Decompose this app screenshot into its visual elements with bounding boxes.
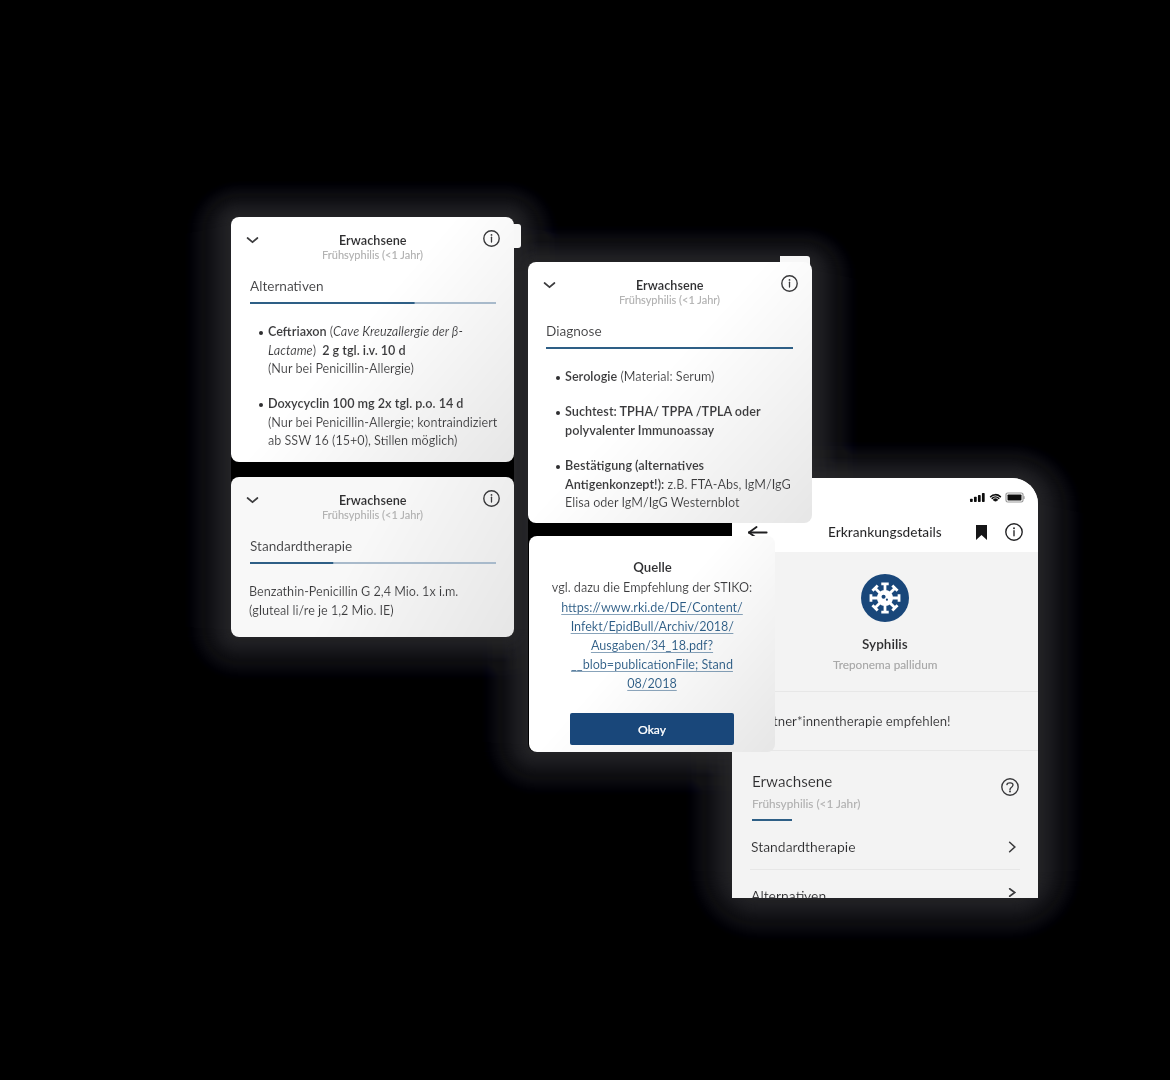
staticText: Frühsyphilis (<1 Jahr) [322, 508, 424, 521]
other: Collapse [542, 277, 557, 292]
button[interactable]: Info [483, 490, 500, 507]
staticText: Doxycyclin 100 mg 2x tgl. p.o. 14 d (Nur… [268, 396, 500, 448]
button[interactable]: Erwachsene [528, 262, 812, 523]
button[interactable]: Collapse [245, 492, 260, 507]
staticText: Erwachsene [636, 278, 704, 293]
staticText: Okay [638, 722, 667, 737]
other: Help [1001, 778, 1019, 796]
staticText: Standardtherapie [751, 838, 1005, 855]
button[interactable]: Erwachsene [231, 477, 514, 637]
button[interactable]: Back [741, 516, 773, 548]
button[interactable]: Info [483, 230, 500, 247]
button[interactable]: Bookmark [967, 518, 995, 546]
other: Info [483, 490, 500, 507]
staticText: Benzathin-Penicillin G 2,4 Mio. 1x i.m. … [249, 584, 459, 618]
other: Collapse [245, 232, 260, 247]
staticText: Diagnose [546, 323, 602, 339]
staticText: Erkrankungsdetails [828, 524, 942, 540]
staticText: Ceftriaxon (Cave Kreuzallergie der β-Lac… [268, 324, 500, 376]
staticText: Alternativen [250, 278, 324, 294]
button[interactable]: Collapse [245, 232, 260, 247]
other: Info [1005, 523, 1023, 541]
staticText: Erwachsene [752, 772, 833, 790]
staticText: Frühsyphilis (<1 Jahr) [619, 293, 721, 306]
button[interactable]: Info [1000, 518, 1028, 546]
staticText: Erwachsene [339, 233, 407, 248]
button[interactable]: Okay [570, 713, 734, 745]
button[interactable]: Help [1001, 778, 1019, 796]
button[interactable]: Erwachsene [752, 772, 1019, 821]
staticText: vgl. dazu die Empfehlung der STIKO: http… [547, 580, 757, 690]
other: Info [781, 275, 798, 292]
button[interactable]: Standardtherapie [732, 824, 1038, 869]
button[interactable]: Partner*innentherapie empfehlen! [732, 692, 1038, 750]
staticText: Quelle [633, 559, 672, 575]
staticText: Alternativen [751, 887, 1005, 898]
staticText: Frühsyphilis (<1 Jahr) [752, 796, 861, 810]
button[interactable]: Alternativen [732, 887, 1038, 898]
staticText: Bestätigung (alternatives Antigenkonzept… [565, 458, 794, 510]
staticText: Standardtherapie [250, 538, 353, 554]
other: Collapse [245, 492, 260, 507]
button[interactable]: Collapse [542, 277, 557, 292]
staticText: Serologie (Material: Serum) [565, 369, 715, 384]
staticText: Suchtest: TPHA/ TPPA /TPLA oder polyvale… [565, 404, 794, 438]
button[interactable]: Erwachsene [231, 217, 514, 462]
staticText: Frühsyphilis (<1 Jahr) [322, 248, 424, 261]
staticText: Syphilis [862, 636, 908, 652]
staticText: Erwachsene [339, 493, 407, 508]
staticText: Partner*innentherapie empfehlen! [754, 713, 951, 729]
button[interactable]: Info [781, 275, 798, 292]
staticText: Treponema pallidum [833, 657, 938, 671]
other: Info [483, 230, 500, 247]
